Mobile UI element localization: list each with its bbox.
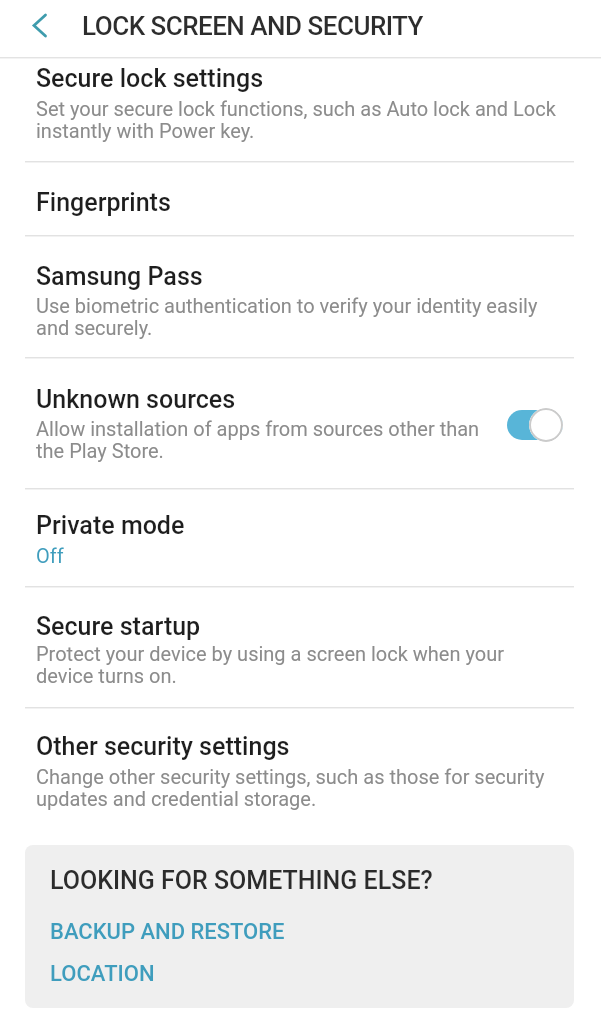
button[interactable]: Private mode bbox=[0, 489, 601, 586]
staticText: Private mode bbox=[36, 511, 185, 540]
staticText: Other security settings bbox=[36, 732, 290, 761]
staticText: Secure lock settings bbox=[36, 64, 264, 93]
button[interactable]: Fingerprints bbox=[0, 162, 601, 235]
button[interactable]: Secure lock settings bbox=[0, 58, 601, 161]
button[interactable]: Unknown sources bbox=[0, 358, 601, 488]
button[interactable]: Other security settings bbox=[0, 708, 601, 845]
staticText: instantly with Power key. bbox=[36, 119, 255, 142]
staticText: LOOKING FOR SOMETHING ELSE? bbox=[50, 866, 433, 895]
staticText: updates and credential storage. bbox=[36, 787, 317, 810]
staticText: Off bbox=[36, 544, 64, 567]
staticText: Protect your device by using a screen lo… bbox=[36, 642, 505, 665]
staticText: the Play Store. bbox=[36, 439, 164, 462]
staticText: device turns on. bbox=[36, 664, 177, 687]
staticText: Samsung Pass bbox=[36, 262, 203, 291]
staticText: Use biometric authentication to verify y… bbox=[36, 294, 538, 317]
button[interactable]: BACKUP AND RESTORE bbox=[50, 919, 285, 947]
staticText: Set your secure lock functions, such as … bbox=[36, 97, 556, 120]
staticText: Unknown sources bbox=[36, 385, 236, 414]
button[interactable]: LOCATION bbox=[50, 961, 155, 989]
staticText: Allow installation of apps from sources … bbox=[36, 417, 480, 440]
staticText: LOCATION bbox=[50, 961, 155, 987]
button[interactable]: Samsung Pass bbox=[0, 236, 601, 357]
button[interactable]: Secure startup bbox=[0, 587, 601, 707]
staticText: and securely. bbox=[36, 316, 153, 339]
staticText: BACKUP AND RESTORE bbox=[50, 919, 285, 945]
staticText: Change other security settings, such as … bbox=[36, 765, 545, 788]
staticText: Secure startup bbox=[36, 612, 201, 641]
staticText: LOCK SCREEN AND SECURITY bbox=[82, 11, 423, 41]
staticText: Fingerprints bbox=[36, 188, 171, 217]
button[interactable] bbox=[507, 410, 563, 440]
button[interactable] bbox=[20, 8, 60, 48]
